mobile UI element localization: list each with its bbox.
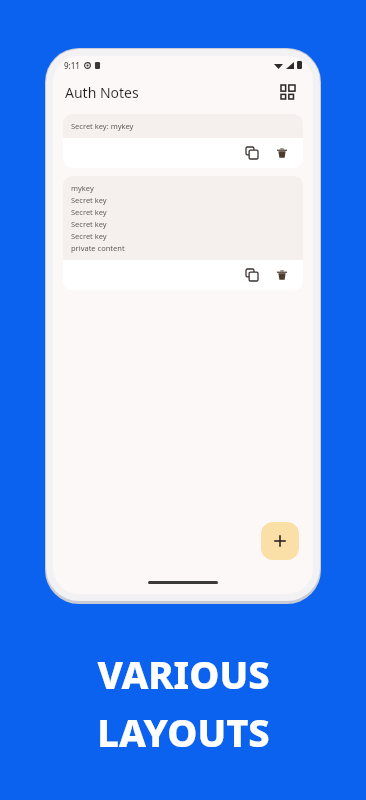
button[interactable]: Copy — [241, 264, 263, 286]
staticText: Auth Notes — [65, 83, 139, 102]
staticText: private content — [71, 243, 125, 253]
button[interactable]: Delete — [271, 264, 293, 286]
button[interactable]: Delete — [271, 142, 293, 164]
staticText: Secret key — [71, 231, 107, 241]
staticText: LAYOUTS — [97, 706, 270, 758]
button[interactable]: Secret key: mykey — [63, 114, 303, 168]
staticText: Secret key — [71, 195, 107, 205]
staticText: Secret key: mykey — [71, 121, 134, 131]
button[interactable]: Grid view — [275, 79, 301, 105]
staticText: VARIOUS — [97, 648, 270, 700]
button[interactable]: mykey — [63, 176, 303, 290]
button[interactable]: Add note — [261, 522, 299, 560]
staticText: Secret key — [71, 207, 107, 217]
staticText: Secret key — [71, 219, 107, 229]
button[interactable]: Copy — [241, 142, 263, 164]
staticText: 9:11 — [64, 60, 80, 71]
staticText: mykey — [71, 183, 94, 193]
